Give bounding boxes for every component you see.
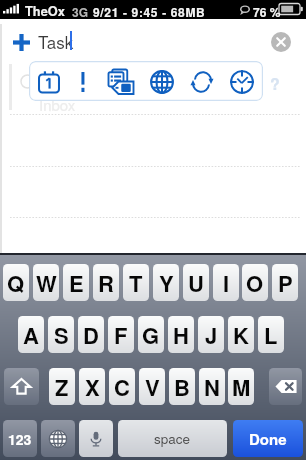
button[interactable]: Notes xyxy=(103,64,138,99)
button[interactable]: L xyxy=(258,316,284,353)
staticText: ? xyxy=(270,72,280,95)
staticText: P xyxy=(278,267,293,299)
button[interactable]: X xyxy=(79,368,105,405)
staticText: J xyxy=(205,319,218,351)
button[interactable]: H xyxy=(168,316,194,353)
button[interactable]: S xyxy=(48,316,74,353)
staticText: Q xyxy=(7,267,25,299)
button[interactable]: Backspace xyxy=(269,368,302,405)
button[interactable]: Done xyxy=(233,420,303,457)
staticText: X xyxy=(85,371,100,403)
button[interactable]: W xyxy=(33,264,59,301)
staticText: O xyxy=(246,267,264,299)
staticText: C xyxy=(114,371,130,403)
staticText: K xyxy=(233,319,249,351)
staticText: N xyxy=(204,371,220,403)
button[interactable]: F xyxy=(108,316,134,353)
button[interactable]: E xyxy=(63,264,89,301)
button[interactable]: D xyxy=(78,316,104,353)
staticText: 3G xyxy=(72,3,89,20)
button[interactable]: Numbers xyxy=(3,420,37,457)
staticText: G xyxy=(142,319,160,351)
staticText: D xyxy=(83,319,99,351)
button[interactable]: Shift xyxy=(4,368,39,405)
button[interactable]: A xyxy=(18,316,44,353)
button[interactable]: B xyxy=(169,368,195,405)
button[interactable]: Due date xyxy=(33,66,65,98)
staticText: R xyxy=(98,267,114,299)
staticText: H xyxy=(173,319,189,351)
staticText: V xyxy=(145,371,160,403)
staticText: space xyxy=(154,429,191,448)
button[interactable]: P xyxy=(272,264,298,301)
staticText: Y xyxy=(159,267,174,299)
button[interactable]: T xyxy=(123,264,149,301)
button[interactable]: J xyxy=(198,316,224,353)
button[interactable]: Repeat xyxy=(185,65,219,99)
staticText: W xyxy=(36,267,57,299)
button[interactable]: K xyxy=(228,316,254,353)
button[interactable]: M xyxy=(228,368,254,405)
staticText: A xyxy=(23,319,39,351)
staticText: I xyxy=(223,267,230,299)
button[interactable]: space xyxy=(118,420,227,457)
staticText: E xyxy=(69,267,84,299)
staticText: B xyxy=(174,371,190,403)
staticText: 76 % xyxy=(253,3,281,20)
button[interactable]: O xyxy=(242,264,268,301)
button[interactable]: V xyxy=(139,368,165,405)
button[interactable]: Location xyxy=(145,65,179,99)
button[interactable]: N xyxy=(199,368,225,405)
button[interactable]: Z xyxy=(49,368,75,405)
button[interactable]: Change keyboard xyxy=(41,420,75,457)
staticText: S xyxy=(54,319,69,351)
staticText: Task xyxy=(38,29,74,53)
button[interactable]: G xyxy=(138,316,164,353)
button[interactable]: Clear text xyxy=(271,32,291,52)
staticText: Done xyxy=(249,428,287,449)
staticText: F xyxy=(114,319,128,351)
button[interactable]: Priority xyxy=(75,67,91,97)
button[interactable]: U xyxy=(183,264,209,301)
staticText: TheOx xyxy=(25,2,65,20)
staticText: L xyxy=(264,319,278,351)
staticText: Z xyxy=(55,371,69,403)
button[interactable]: Y xyxy=(153,264,179,301)
staticText: 123 xyxy=(8,429,32,449)
button[interactable]: R xyxy=(93,264,119,301)
staticText: T xyxy=(129,267,143,299)
staticText: U xyxy=(188,267,204,299)
button[interactable]: Q xyxy=(3,264,29,301)
staticText: 9/21 - 9:45 - 68MB xyxy=(93,3,206,20)
staticText: Inbox xyxy=(39,94,76,115)
button[interactable]: Reminder xyxy=(225,65,259,99)
button[interactable]: I xyxy=(213,264,239,301)
button[interactable]: Dictate xyxy=(79,420,113,457)
staticText: M xyxy=(232,371,251,403)
button[interactable]: C xyxy=(109,368,135,405)
